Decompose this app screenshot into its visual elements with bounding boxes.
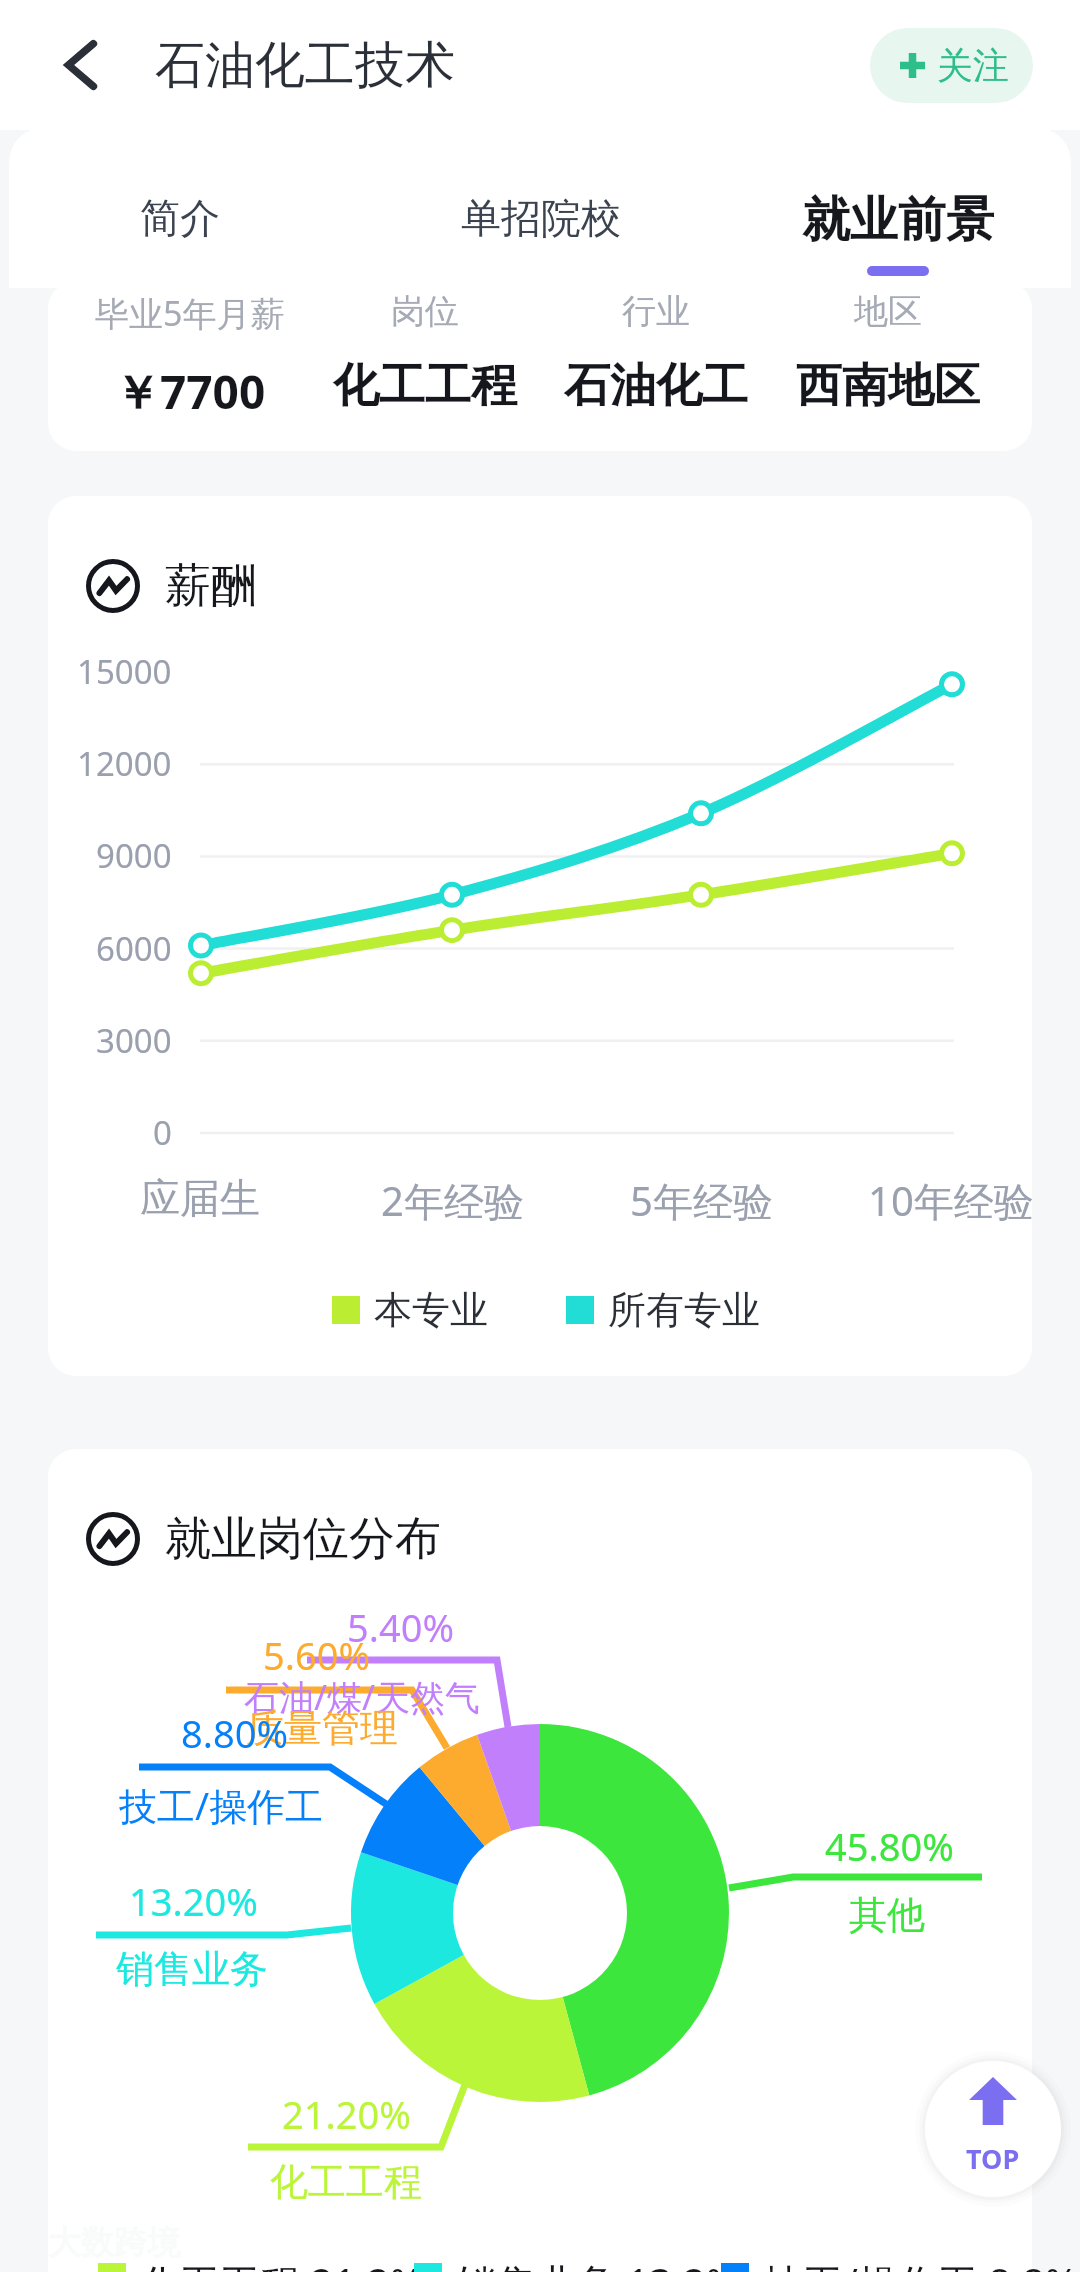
staticText: 西南地区: [796, 357, 980, 415]
staticText: 45.80%: [825, 1820, 954, 1872]
staticText: 简介: [140, 193, 220, 243]
staticText: 薪酬: [165, 557, 257, 615]
staticText: 0: [153, 1110, 172, 1155]
staticText: 质量管理: [246, 1704, 398, 1752]
staticText: 石油化工: [564, 357, 748, 415]
staticText: 大数跨境: [48, 2222, 180, 2264]
staticText: 6000: [96, 926, 172, 971]
staticText: 5.40%: [347, 1601, 454, 1653]
staticText: 化工工程: [270, 2158, 422, 2206]
staticText: 单招院校: [461, 193, 621, 243]
staticText: 13.20%: [129, 1875, 258, 1927]
staticText: 本专业: [374, 1286, 488, 1334]
staticText: 关注: [937, 43, 1009, 88]
staticText: ￥7700: [114, 360, 266, 423]
staticText: 岗位: [391, 290, 459, 333]
staticText: 销售业务: [116, 1945, 268, 1993]
staticText: 12000: [77, 741, 172, 786]
staticText: 15000: [77, 649, 172, 694]
staticText: 技工/操作工 8.8%: [763, 2255, 1078, 2272]
staticText: 5.60%: [263, 1629, 370, 1681]
staticText: 化工工程: [333, 357, 517, 415]
staticText: 销售业务 13.2%: [456, 2255, 739, 2272]
button[interactable]: Back to top: [913, 2049, 1073, 2209]
staticText: 地区: [854, 290, 922, 333]
staticText: 就业前景: [802, 190, 994, 250]
staticText: 10年经验: [868, 1173, 1032, 1228]
staticText: 所有专业: [608, 1286, 760, 1334]
staticText: 化工工程 21.2%: [140, 2255, 423, 2272]
staticText: 石油化工技术: [155, 34, 455, 97]
staticText: 其他: [849, 1891, 925, 1939]
staticText: 8.80%: [181, 1707, 288, 1759]
staticText: 行业: [622, 290, 690, 333]
button[interactable]: Back: [40, 25, 120, 105]
staticText: 石油/煤/天然气: [244, 1673, 481, 1721]
staticText: 2年经验: [381, 1173, 524, 1228]
staticText: 3000: [96, 1018, 172, 1063]
button[interactable]: 就业前景: [738, 190, 1058, 276]
staticText: 毕业5年月薪: [95, 290, 285, 336]
staticText: 技工/操作工: [119, 1779, 324, 1831]
staticText: 9000: [96, 833, 172, 878]
button[interactable]: 单招院校: [381, 193, 701, 243]
button[interactable]: 关注: [870, 28, 1033, 103]
staticText: 应届生: [140, 1173, 260, 1223]
staticText: 21.20%: [282, 2088, 411, 2140]
staticText: 就业岗位分布: [165, 1510, 441, 1568]
staticText: 5年经验: [630, 1173, 773, 1228]
button[interactable]: 简介: [20, 193, 340, 243]
staticText: TOP: [966, 2140, 1020, 2177]
